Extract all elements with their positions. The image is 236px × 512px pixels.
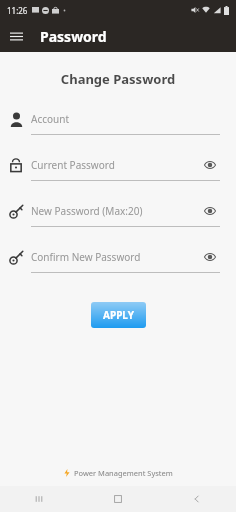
staticText: New Password (Max:20) [31, 204, 143, 218]
staticText: Confirm New Password [31, 250, 141, 264]
button[interactable]: Show password [200, 247, 220, 267]
staticText: Change Password [0, 70, 236, 88]
button[interactable]: APPLY [91, 302, 146, 328]
button[interactable]: Back [157, 486, 236, 512]
staticText: Account [31, 112, 70, 126]
button[interactable]: Menu [0, 20, 32, 52]
staticText: Current Password [31, 158, 115, 172]
staticText: 11:26 [7, 5, 28, 16]
button[interactable]: Show password [200, 155, 220, 175]
staticText: Password [40, 27, 107, 46]
staticText: APPLY [103, 308, 134, 322]
button[interactable]: Recent apps [0, 486, 78, 512]
staticText: Power Management System [74, 468, 173, 478]
button[interactable]: Home [78, 486, 157, 512]
button[interactable]: Show password [200, 201, 220, 221]
